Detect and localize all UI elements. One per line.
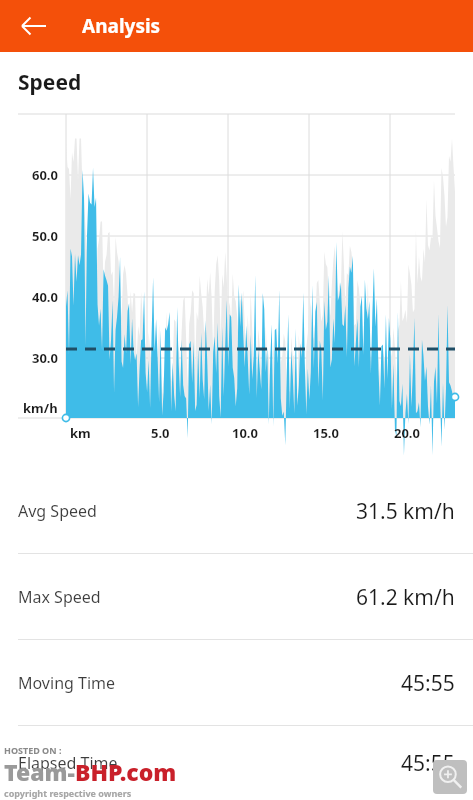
button[interactable]: Max Speed [0, 554, 473, 640]
staticText: 61.2 km/h [356, 583, 455, 612]
button[interactable]: Avg Speed [0, 468, 473, 554]
staticText: km/h [23, 399, 58, 417]
button[interactable]: Moving Time [0, 640, 473, 726]
staticText: copyright respective owners [4, 787, 132, 799]
staticText: BHP.com [75, 756, 177, 787]
staticText: 10.0 [232, 424, 258, 442]
staticText: 50.0 [32, 227, 58, 245]
staticText: km [70, 424, 91, 442]
staticText: 31.5 km/h [356, 497, 455, 526]
staticText: Speed [18, 68, 82, 97]
staticText: 20.0 [394, 424, 420, 442]
staticText: Analysis [82, 13, 161, 39]
staticText: Avg Speed [18, 500, 97, 522]
staticText: 5.0 [151, 424, 170, 442]
staticText: 45:55 [401, 669, 455, 698]
staticText: 60.0 [32, 166, 58, 184]
staticText: 30.0 [32, 349, 58, 367]
staticText: Team- [4, 756, 75, 787]
button[interactable]: Zoom in [433, 760, 467, 794]
staticText: Moving Time [18, 672, 116, 694]
staticText: 15.0 [313, 424, 339, 442]
staticText: Elapsed Time [18, 752, 118, 774]
staticText: 40.0 [32, 288, 58, 306]
button[interactable]: Back [10, 3, 56, 49]
staticText: HOSTED ON : [4, 744, 62, 756]
button[interactable]: Elapsed Time [0, 726, 473, 800]
staticText: 45:55 [401, 749, 455, 778]
staticText: Max Speed [18, 586, 101, 608]
